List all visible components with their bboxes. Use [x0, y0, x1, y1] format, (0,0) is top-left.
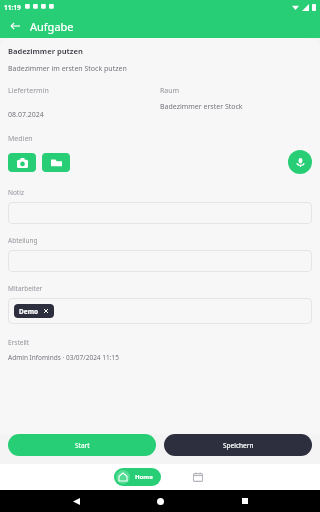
button[interactable]: Record audio: [288, 150, 312, 174]
button[interactable]: [8, 202, 312, 224]
staticText: Abteilung: [8, 236, 38, 245]
button[interactable]: Home: [151, 492, 169, 510]
button[interactable]: Back: [8, 19, 22, 33]
button[interactable]: Open files: [42, 153, 70, 172]
staticText: 08.07.2024: [8, 110, 44, 120]
button[interactable]: Recents: [236, 492, 254, 510]
staticText: Medien: [8, 134, 33, 144]
button[interactable]: Home: [114, 468, 161, 486]
staticText: Raum: [160, 86, 180, 96]
button[interactable]: Take photo: [8, 153, 36, 172]
staticText: Admin Infominds · 03/07/2024 11:15: [8, 353, 119, 362]
button[interactable]: Demo: [14, 304, 54, 318]
staticText: Notiz: [8, 188, 24, 197]
button[interactable]: Calendar: [189, 468, 207, 486]
staticText: Badezimmer im ersten Stock putzen: [8, 64, 127, 74]
staticText: Aufgabe: [30, 19, 74, 34]
staticText: Demo: [19, 307, 39, 316]
staticText: Badezimmer putzen: [8, 46, 83, 56]
staticText: 11:19: [4, 3, 21, 12]
button[interactable]: Speichern: [164, 434, 312, 456]
staticText: Start: [75, 441, 90, 450]
staticText: Erstellt: [8, 338, 30, 347]
staticText: Mitarbeiter: [8, 284, 43, 293]
button[interactable]: Demo: [8, 298, 312, 324]
staticText: Badezimmer erster Stock: [160, 102, 243, 112]
button[interactable]: [8, 250, 312, 272]
button[interactable]: Back: [67, 492, 85, 510]
button[interactable]: Start: [8, 434, 156, 456]
staticText: Speichern: [223, 441, 254, 450]
staticText: Home: [135, 473, 153, 481]
staticText: Liefertermin: [8, 86, 49, 96]
